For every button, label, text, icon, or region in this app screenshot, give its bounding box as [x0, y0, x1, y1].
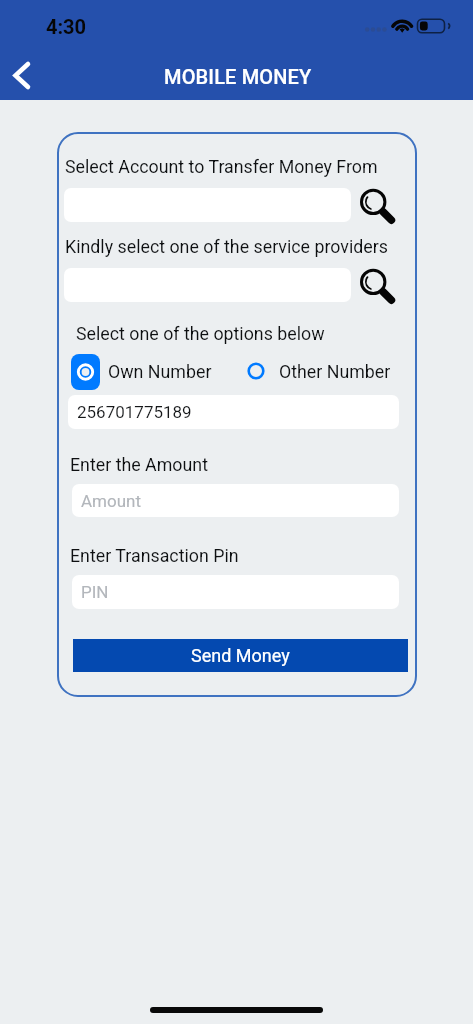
- button[interactable]: Send Money: [73, 639, 408, 672]
- button[interactable]: Amount: [72, 484, 399, 517]
- button[interactable]: 256701775189: [68, 395, 399, 429]
- staticText: Select one of the options below: [76, 323, 325, 344]
- button[interactable]: Back: [0, 52, 44, 100]
- button[interactable]: Own Number: [71, 350, 175, 390]
- staticText: 256701775189: [77, 402, 192, 422]
- staticText: Kindly select one of the service provide…: [65, 236, 388, 257]
- staticText: MOBILE MONEY: [164, 65, 312, 88]
- button[interactable]: Search service provider: [359, 267, 397, 305]
- staticText: Other Number: [279, 361, 391, 382]
- staticText: PIN: [81, 582, 109, 602]
- button[interactable]: PIN: [72, 575, 399, 609]
- staticText: Own Number: [108, 361, 212, 382]
- staticText: Enter the Amount: [70, 454, 208, 475]
- staticText: Send Money: [191, 645, 290, 666]
- staticText: 4:30: [46, 15, 87, 38]
- staticText: Select Account to Transfer Money From: [65, 156, 378, 177]
- button[interactable]: Other Number: [246, 350, 358, 390]
- staticText: Enter Transaction Pin: [70, 545, 239, 566]
- button[interactable]: Search account: [359, 187, 397, 225]
- staticText: Amount: [81, 491, 142, 511]
